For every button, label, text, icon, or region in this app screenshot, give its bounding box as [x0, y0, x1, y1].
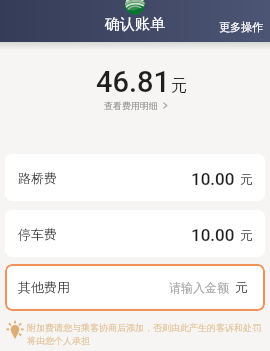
staticText: 元 [235, 279, 248, 295]
staticText: 元 [240, 171, 253, 187]
staticText: 元 [171, 76, 187, 96]
staticText: 确认账单 [105, 15, 165, 34]
button[interactable]: 查看费用明细 [100, 99, 171, 112]
button[interactable]: 路桥费 [5, 154, 265, 201]
staticText: 请输入金额 [169, 280, 229, 295]
staticText: 元 [240, 227, 253, 243]
staticText: 10.00 [191, 169, 235, 189]
button[interactable]: 更多操作 [219, 20, 270, 42]
staticText: 更多操作 [219, 20, 263, 34]
button[interactable]: 停车费 [5, 210, 265, 257]
other: 应用图标 [125, 0, 145, 15]
staticText: 路桥费 [18, 170, 57, 186]
staticText: 46.81 [96, 65, 170, 99]
staticText: 10.00 [191, 225, 235, 245]
staticText: 附加费请您与乘客协商后添加，否则由此产生的客诉和处罚将由您个人承担 [27, 322, 266, 346]
button[interactable]: 其他费用 [5, 264, 265, 311]
staticText: 其他费用 [18, 279, 70, 295]
staticText: 查看费用明细 [104, 100, 158, 111]
staticText: 停车费 [18, 226, 57, 242]
